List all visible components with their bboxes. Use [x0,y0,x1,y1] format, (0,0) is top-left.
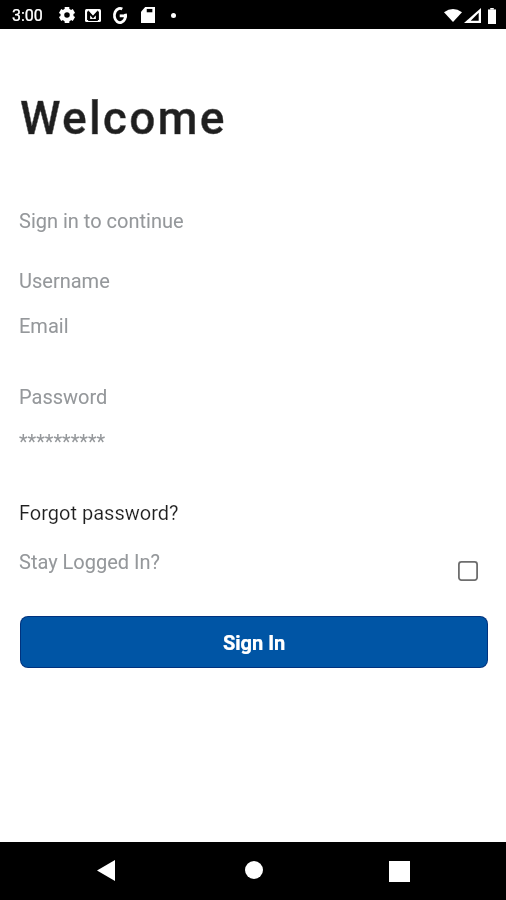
staticText: Sign In [223,631,286,654]
staticText: Username [19,269,110,292]
button[interactable]: Home [226,842,282,898]
button[interactable]: Recent apps [371,843,427,899]
staticText: 3:00 [12,6,43,25]
staticText: Email [19,314,69,337]
button[interactable]: Stay Logged In checkbox [447,550,489,592]
button[interactable]: Back [78,842,134,898]
button[interactable]: Forgot password? [19,501,179,524]
staticText: Welcome [20,91,227,145]
staticText: Sign in to continue [19,209,184,232]
staticText: ********** [19,430,106,453]
staticText: Welcome [20,91,227,145]
staticText: Password [19,385,108,408]
staticText: Stay Logged In? [19,550,160,573]
button[interactable]: Sign In [21,617,487,667]
